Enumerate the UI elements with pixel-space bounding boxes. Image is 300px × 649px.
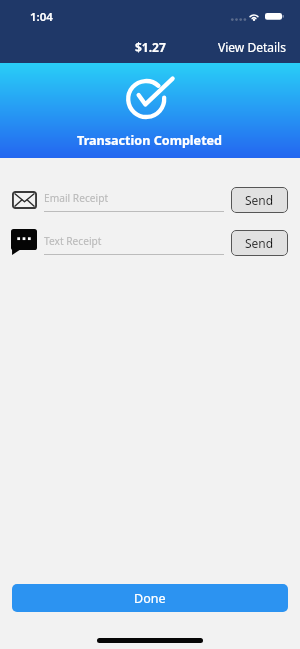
staticText: Transaction Completed bbox=[77, 132, 223, 149]
staticText: $1.27 bbox=[135, 39, 166, 55]
other: Email receipt bbox=[12, 191, 37, 209]
staticText: Done bbox=[134, 590, 166, 607]
staticText: 1:04 bbox=[30, 9, 53, 25]
staticText: View Details bbox=[218, 39, 286, 55]
other: Text receipt bbox=[11, 229, 37, 255]
button[interactable]: Send bbox=[231, 187, 288, 213]
button[interactable]: View Details bbox=[205, 32, 300, 62]
staticText: Text Receipt bbox=[44, 234, 102, 248]
staticText: Send bbox=[245, 235, 274, 251]
button[interactable]: Done bbox=[12, 584, 288, 612]
other: Wi-Fi bbox=[248, 11, 261, 21]
other: Battery bbox=[264, 12, 285, 22]
button[interactable]: Send bbox=[231, 230, 288, 256]
staticText: Send bbox=[245, 192, 274, 208]
staticText: Email Receipt bbox=[44, 191, 109, 205]
